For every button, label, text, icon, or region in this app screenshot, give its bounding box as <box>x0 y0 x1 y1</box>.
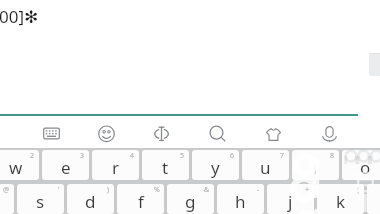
staticText: ) <box>107 185 110 195</box>
button[interactable]: y <box>192 150 239 180</box>
button[interactable]: i <box>292 150 339 180</box>
staticText: h <box>235 190 246 213</box>
staticText: 00]✻ <box>0 5 39 28</box>
button[interactable]: Voice input <box>301 117 357 149</box>
button[interactable]: f <box>117 184 164 214</box>
staticText: ' <box>58 185 60 195</box>
staticText: j <box>288 190 293 213</box>
staticText: 5 <box>180 151 185 161</box>
button[interactable]: j <box>267 184 314 214</box>
button[interactable]: t <box>142 150 189 180</box>
staticText: 4 <box>130 151 135 161</box>
button[interactable]: r <box>92 150 139 180</box>
button[interactable]: e <box>42 150 89 180</box>
staticText: i <box>313 156 318 179</box>
staticText: & <box>204 185 210 195</box>
staticText: f <box>138 190 144 213</box>
button[interactable]: Keyboard <box>24 117 79 149</box>
staticText: % <box>154 185 160 195</box>
staticText: 3 <box>80 151 85 161</box>
button[interactable]: Theme <box>245 117 301 149</box>
staticText: e <box>61 156 71 179</box>
staticText: o <box>360 156 371 179</box>
staticText: d <box>85 190 96 213</box>
button[interactable]: Search <box>189 117 245 149</box>
button[interactable]: h <box>217 184 264 214</box>
staticText: 6 <box>230 151 235 161</box>
button[interactable]: w <box>0 150 39 180</box>
staticText: w <box>9 156 23 179</box>
staticText: r <box>112 156 120 179</box>
button[interactable]: g <box>167 184 214 214</box>
staticText: @ <box>3 185 10 195</box>
button[interactable]: k <box>317 184 364 214</box>
button[interactable]: Handwriting <box>134 117 189 149</box>
button[interactable]: a <box>0 184 14 214</box>
button[interactable]: o <box>342 150 380 180</box>
staticText: g <box>185 190 196 213</box>
staticText: 7 <box>280 151 285 161</box>
staticText: + <box>305 185 310 195</box>
button[interactable]: Emoji <box>79 117 134 149</box>
staticText: s <box>36 190 45 213</box>
staticText: u <box>260 156 271 179</box>
button[interactable]: d <box>67 184 114 214</box>
staticText: 2 <box>30 151 35 161</box>
button[interactable]: u <box>242 150 289 180</box>
staticText: y <box>211 156 220 179</box>
staticText: ( <box>357 185 360 195</box>
staticText: 8 <box>330 151 335 161</box>
staticText: - <box>257 185 260 195</box>
button[interactable]: s <box>17 184 64 214</box>
staticText: k <box>336 190 346 213</box>
staticText: t <box>162 156 169 179</box>
